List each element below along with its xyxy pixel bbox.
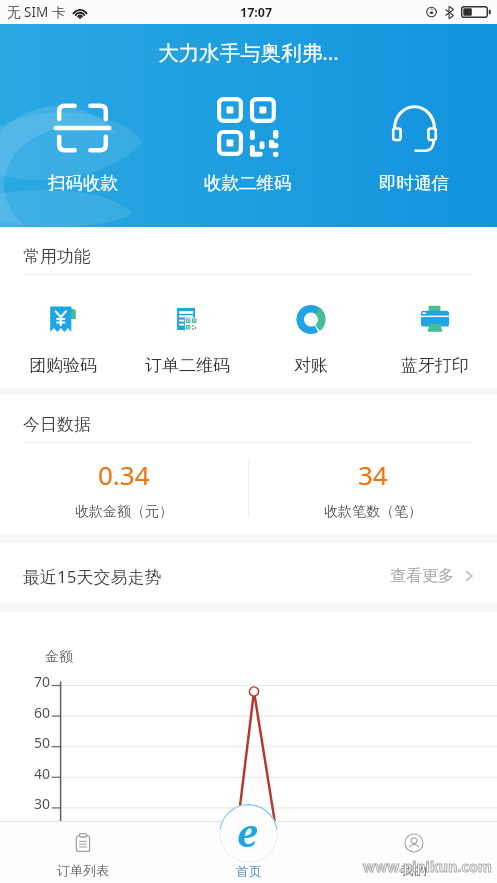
staticText: 60 <box>34 703 51 722</box>
staticText: 查看更多 <box>390 566 454 586</box>
staticText: 对账 <box>294 355 328 376</box>
button[interactable]: 查看更多 <box>390 566 475 586</box>
staticText: 30 <box>34 794 51 813</box>
button[interactable]: 订单列表 <box>0 821 165 883</box>
button[interactable]: 34 <box>249 443 497 535</box>
staticText: www.pipikun.com <box>363 857 492 876</box>
staticText: 收款笔数（笔） <box>324 503 422 521</box>
button[interactable]: 对账 <box>249 303 373 376</box>
staticText: 70 <box>34 672 51 691</box>
button[interactable]: 0.34 <box>0 443 248 535</box>
staticText: 金额 <box>45 648 73 666</box>
staticText: 0.34 <box>98 457 150 492</box>
staticText: 订单二维码 <box>145 355 230 376</box>
staticText: 今日数据 <box>23 414 91 435</box>
button[interactable]: 即时通信 <box>331 97 497 194</box>
button[interactable]: 首页 <box>219 804 278 863</box>
staticText: 40 <box>34 764 51 783</box>
button[interactable]: 团购验码 <box>0 303 125 376</box>
button[interactable]: 我的 <box>331 821 497 883</box>
staticText: 蓝牙打印 <box>401 355 469 376</box>
button[interactable]: 扫码收款 <box>0 97 165 194</box>
staticText: 收款金额（元） <box>75 503 173 521</box>
button[interactable]: 蓝牙打印 <box>373 303 497 376</box>
staticText: 团购验码 <box>29 355 97 376</box>
staticText: 常用功能 <box>23 246 91 267</box>
staticText: 首页 <box>236 863 262 879</box>
staticText: 34 <box>358 457 388 492</box>
staticText: 我的 <box>401 862 427 878</box>
staticText: e <box>237 806 258 858</box>
staticText: 扫码收款 <box>48 172 118 194</box>
button[interactable]: 订单二维码 <box>125 303 249 376</box>
staticText: 无 SIM 卡 <box>7 3 66 21</box>
staticText: www.pipikun.com <box>363 857 492 876</box>
staticText: 订单列表 <box>57 862 109 878</box>
staticText: 50 <box>34 733 51 752</box>
staticText: 17:07 <box>240 4 273 21</box>
staticText: 即时通信 <box>379 172 449 194</box>
staticText: 大力水手与奥利弗... <box>158 38 339 66</box>
staticText: 收款二维码 <box>204 172 292 194</box>
staticText: 最近15天交易走势 <box>23 565 162 588</box>
button[interactable]: 收款二维码 <box>165 97 331 194</box>
